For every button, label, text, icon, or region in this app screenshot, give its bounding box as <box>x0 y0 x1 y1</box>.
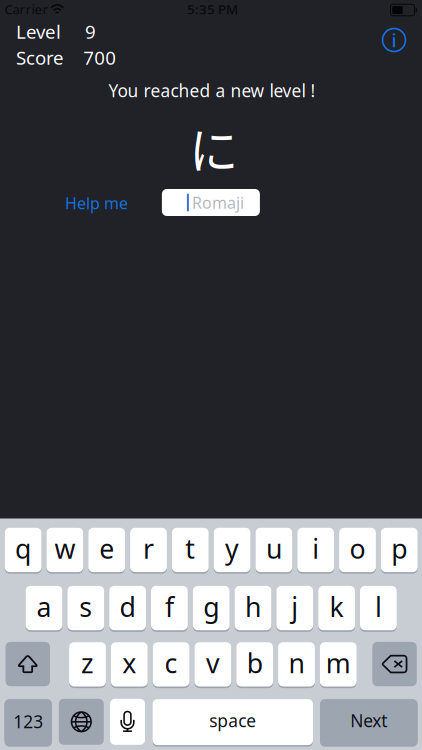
staticText: 123 <box>13 710 43 733</box>
staticText: u <box>266 531 282 566</box>
staticText: b <box>247 645 263 680</box>
staticText: Carrier <box>4 0 48 18</box>
button[interactable]: l <box>360 586 397 631</box>
staticText: m <box>326 645 351 680</box>
staticText: g <box>203 589 219 624</box>
button[interactable]: q <box>5 527 41 573</box>
button[interactable]: z <box>69 642 106 688</box>
staticText: You reached a new level ! <box>108 79 315 102</box>
staticText: l <box>375 589 382 624</box>
staticText: y <box>225 531 239 566</box>
button[interactable]: p <box>381 527 418 573</box>
button[interactable]: e <box>88 527 125 573</box>
button[interactable]: Delete <box>372 642 417 686</box>
staticText: q <box>15 531 31 566</box>
staticText: j <box>291 589 298 624</box>
staticText: 700 <box>83 45 116 70</box>
staticText: Level <box>16 19 61 44</box>
staticText: z <box>81 645 94 680</box>
button[interactable]: space <box>152 699 313 746</box>
button[interactable]: u <box>255 527 292 573</box>
staticText: 5:35 PM <box>187 0 238 18</box>
staticText: f <box>165 589 174 624</box>
button[interactable]: y <box>214 527 250 573</box>
button[interactable]: w <box>46 527 83 573</box>
staticText: t <box>185 531 195 566</box>
button[interactable]: f <box>151 586 188 631</box>
staticText: Score <box>16 45 64 70</box>
button[interactable]: b <box>236 642 273 688</box>
button[interactable]: Romaji <box>162 189 260 216</box>
staticText: i <box>312 531 319 566</box>
button[interactable]: v <box>194 642 231 688</box>
button[interactable]: c <box>153 642 189 688</box>
button[interactable]: Next keyboard <box>59 699 104 745</box>
staticText: w <box>54 531 75 566</box>
button[interactable]: t <box>172 527 209 573</box>
button[interactable]: d <box>109 586 146 631</box>
button[interactable]: h <box>235 586 271 631</box>
button[interactable]: 123 <box>4 699 52 746</box>
staticText: r <box>143 531 154 566</box>
button[interactable]: Information <box>375 21 413 59</box>
button[interactable]: Dictation <box>110 699 145 745</box>
button[interactable]: x <box>111 642 148 688</box>
staticText: e <box>99 531 114 566</box>
staticText: space <box>209 709 256 732</box>
button[interactable]: m <box>320 642 357 688</box>
button[interactable]: g <box>193 586 230 631</box>
button[interactable]: i <box>297 527 334 573</box>
staticText: に <box>189 112 238 183</box>
staticText: Romaji <box>192 192 244 213</box>
staticText: 9 <box>85 19 96 44</box>
staticText: Next <box>350 709 387 732</box>
staticText: h <box>245 589 261 624</box>
staticText: c <box>165 645 178 680</box>
button[interactable]: Help me <box>60 188 132 218</box>
staticText: k <box>330 589 344 624</box>
staticText: a <box>36 589 51 624</box>
button[interactable]: r <box>130 527 167 573</box>
staticText: p <box>391 531 407 566</box>
staticText: s <box>79 589 92 624</box>
button[interactable]: s <box>67 586 104 631</box>
button[interactable]: Shift <box>5 642 50 686</box>
staticText: i <box>391 28 396 52</box>
staticText: Help me <box>65 192 128 214</box>
button[interactable]: n <box>278 642 315 688</box>
staticText: v <box>206 645 220 680</box>
staticText: x <box>122 645 136 680</box>
staticText: o <box>349 531 365 566</box>
button[interactable]: o <box>339 527 376 573</box>
button[interactable]: a <box>26 586 62 631</box>
staticText: d <box>120 589 136 624</box>
button[interactable]: k <box>318 586 355 631</box>
staticText: n <box>288 645 304 680</box>
button[interactable]: j <box>276 586 313 631</box>
button[interactable]: Next <box>320 699 418 746</box>
